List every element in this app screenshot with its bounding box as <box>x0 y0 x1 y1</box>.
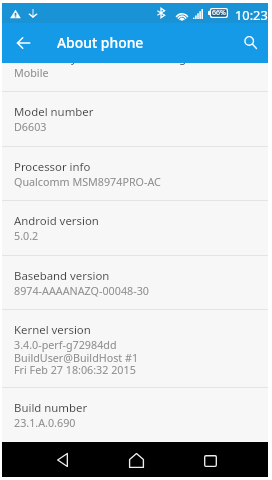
button[interactable]: Baseband version <box>2 256 268 309</box>
button[interactable]: Android version <box>2 201 268 255</box>
staticText: Qualcomm MSM8974PRO-AC <box>14 175 161 190</box>
staticText: Android version <box>14 213 99 229</box>
button[interactable]: Build number <box>2 388 268 442</box>
staticText: Model number <box>14 104 94 120</box>
button[interactable]: Back <box>3 23 44 63</box>
staticText: Baseband version <box>14 268 110 284</box>
button[interactable]: Processor info <box>2 147 268 201</box>
button[interactable]: Recents <box>173 444 247 478</box>
button[interactable]: Home <box>99 443 173 477</box>
button[interactable]: Model number <box>2 92 268 146</box>
staticText: 66% <box>212 8 226 18</box>
button[interactable]: Send anonymous data and usage statistics… <box>2 63 268 91</box>
staticText: Kernel version <box>14 322 91 338</box>
staticText: Processor info <box>14 159 91 175</box>
staticText: D6603 <box>14 120 47 135</box>
staticText: 5.0.2 <box>14 229 39 244</box>
staticText: 10:23 <box>235 6 268 23</box>
staticText: Send anonymous data and usage statistics… <box>14 63 268 66</box>
staticText: Mobile <box>14 66 49 81</box>
staticText: About phone <box>57 33 144 52</box>
button[interactable]: Kernel version <box>2 310 268 388</box>
staticText: 8974-AAAANAZQ-00048-30 <box>14 284 149 299</box>
staticText: 3.4.0-perf-g72984dd BuildUser@BuildHost … <box>14 338 139 377</box>
button[interactable]: Back <box>25 443 99 477</box>
button[interactable]: Search <box>231 22 269 62</box>
staticText: Build number <box>14 400 88 416</box>
staticText: 23.1.A.0.690 <box>14 416 76 431</box>
